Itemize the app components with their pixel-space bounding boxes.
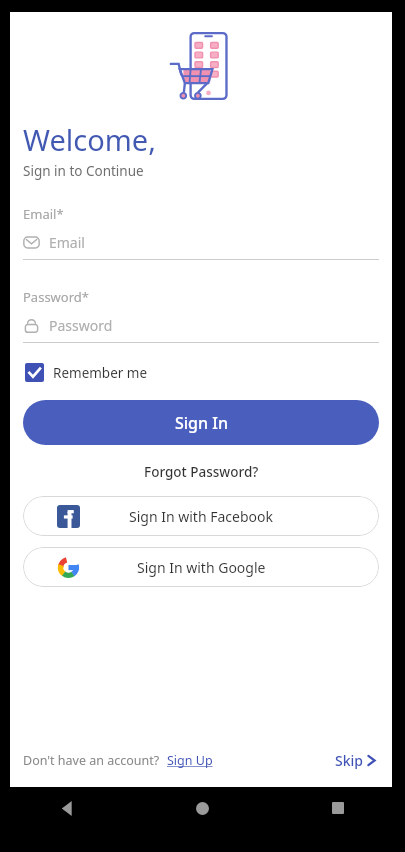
staticText: Forgot Password?	[144, 463, 259, 481]
staticText: Don't have an account?	[23, 752, 160, 769]
button[interactable]: Sign In with Google	[23, 547, 379, 587]
staticText: Password*	[23, 288, 89, 306]
button[interactable]: Sign In with Facebook	[23, 496, 379, 536]
button[interactable]: Recent apps	[270, 787, 405, 829]
staticText: Password	[49, 316, 113, 335]
button[interactable]: Forgot Password?	[138, 460, 265, 484]
staticText: Remember me	[53, 364, 148, 382]
button[interactable]: Back	[0, 787, 135, 829]
staticText: Email*	[23, 205, 64, 223]
staticText: Welcome,	[23, 120, 156, 159]
staticText: Sign in to Continue	[23, 162, 144, 180]
staticText: Email	[49, 233, 85, 252]
staticText: Sign In with Facebook	[129, 507, 273, 526]
staticText: Sign Up	[167, 752, 213, 769]
button[interactable]: Sign Up	[165, 750, 215, 771]
button[interactable]: Sign In	[23, 400, 379, 445]
button[interactable]: Email	[23, 233, 379, 252]
staticText: Sign In with Google	[137, 558, 266, 577]
button[interactable]: Remember me	[23, 359, 150, 386]
button[interactable]: Password	[23, 316, 379, 335]
staticText: Skip	[335, 751, 363, 770]
button[interactable]: Home	[135, 787, 270, 829]
button[interactable]: Skip	[332, 748, 379, 773]
staticText: Sign In	[175, 412, 228, 434]
